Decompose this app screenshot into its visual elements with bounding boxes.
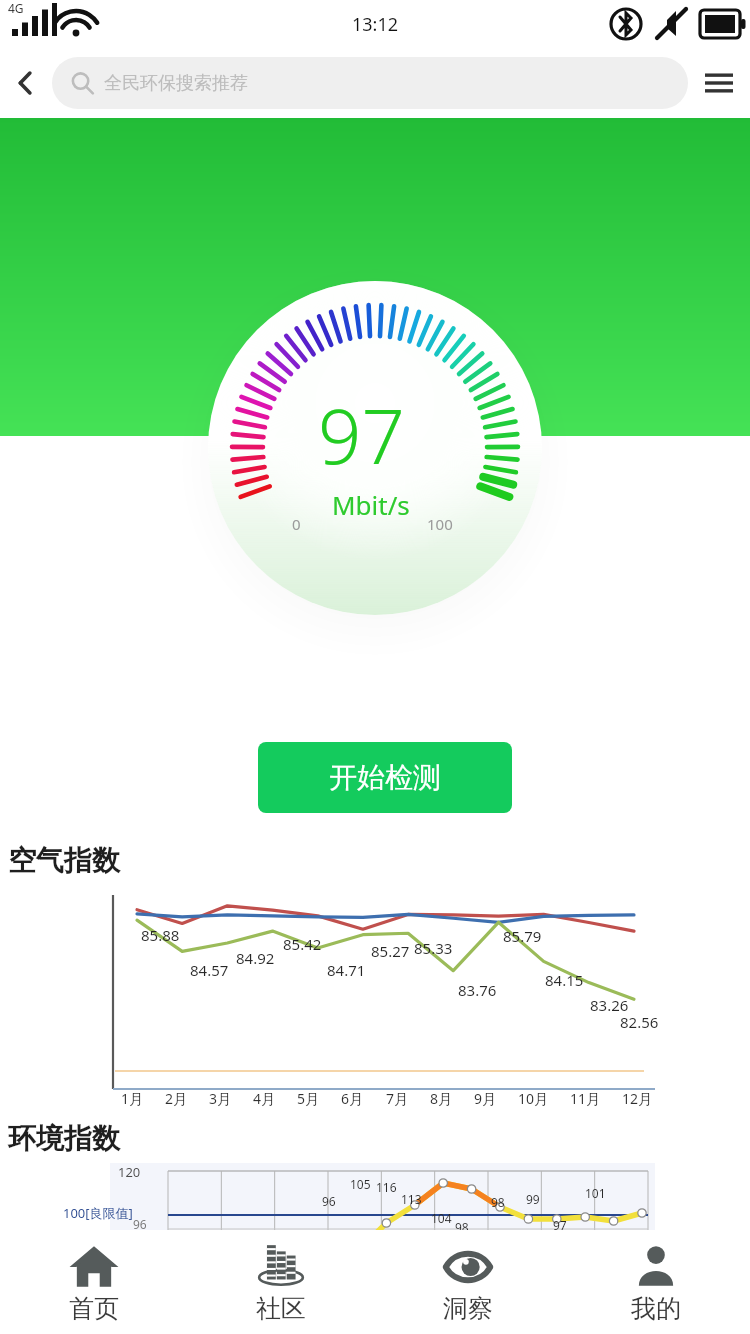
staticText: 2月 bbox=[165, 1089, 188, 1108]
staticText: 7月 bbox=[386, 1089, 409, 1108]
staticText: 10月 bbox=[518, 1089, 549, 1108]
staticText: 0 bbox=[292, 514, 301, 534]
staticText: 100 bbox=[427, 514, 453, 534]
staticText: 社区 bbox=[256, 1293, 306, 1324]
button[interactable]: Back bbox=[0, 48, 52, 118]
staticText: 84.57 bbox=[190, 960, 229, 980]
staticText: 101 bbox=[585, 1185, 606, 1201]
staticText: 9月 bbox=[474, 1089, 497, 1108]
staticText: 85.42 bbox=[283, 934, 322, 954]
staticText: 3月 bbox=[209, 1089, 232, 1108]
staticText: 98 bbox=[455, 1219, 469, 1235]
staticText: 120 bbox=[118, 1163, 141, 1181]
staticText: 105 bbox=[350, 1176, 371, 1192]
staticText: 1月 bbox=[121, 1089, 144, 1108]
staticText: 开始检测 bbox=[329, 760, 441, 795]
staticText: 96 bbox=[133, 1216, 147, 1232]
staticText: 85.27 bbox=[371, 941, 410, 961]
staticText: 85.79 bbox=[503, 926, 542, 946]
staticText: 104 bbox=[431, 1210, 452, 1226]
staticText: 84.92 bbox=[236, 948, 275, 968]
staticText: 8月 bbox=[430, 1089, 453, 1108]
staticText: 83.76 bbox=[458, 980, 497, 1000]
button[interactable]: 洞察 bbox=[374, 1230, 562, 1334]
staticText: 13:12 bbox=[352, 12, 399, 37]
staticText: Mbit/s bbox=[332, 487, 410, 522]
staticText: 11月 bbox=[570, 1089, 601, 1108]
button[interactable]: 我的 bbox=[562, 1230, 750, 1334]
button[interactable]: 开始检测 bbox=[258, 742, 512, 813]
button[interactable]: 社区 bbox=[187, 1230, 374, 1334]
staticText: 5月 bbox=[297, 1089, 320, 1108]
staticText: 116 bbox=[376, 1179, 397, 1195]
staticText: 113 bbox=[401, 1191, 422, 1207]
staticText: 4月 bbox=[253, 1089, 276, 1108]
staticText: 99 bbox=[526, 1191, 540, 1207]
staticText: 12月 bbox=[622, 1089, 653, 1108]
staticText: 85.33 bbox=[414, 938, 453, 958]
staticText: 84.71 bbox=[327, 960, 366, 980]
staticText: 96 bbox=[322, 1193, 336, 1209]
staticText: 洞察 bbox=[443, 1293, 493, 1324]
staticText: 全民环保搜索推荐 bbox=[104, 72, 248, 95]
staticText: 100[良限值] bbox=[63, 1204, 133, 1222]
staticText: 97 bbox=[553, 1217, 567, 1233]
button[interactable]: 全民环保搜索推荐 bbox=[52, 57, 688, 109]
staticText: 6月 bbox=[341, 1089, 364, 1108]
button[interactable]: 首页 bbox=[0, 1230, 187, 1334]
staticText: 4G bbox=[8, 0, 24, 16]
staticText: 环境指数 bbox=[8, 1121, 120, 1156]
staticText: 97 bbox=[318, 383, 405, 487]
staticText: 空气指数 bbox=[8, 843, 120, 878]
staticText: 84.15 bbox=[545, 970, 584, 990]
staticText: 85.88 bbox=[141, 925, 180, 945]
staticText: 我的 bbox=[631, 1293, 681, 1324]
staticText: 98 bbox=[491, 1194, 505, 1210]
button[interactable]: Menu bbox=[688, 48, 750, 118]
staticText: 首页 bbox=[69, 1293, 119, 1324]
staticText: 82.56 bbox=[620, 1012, 659, 1032]
staticText: 83.26 bbox=[590, 995, 629, 1015]
